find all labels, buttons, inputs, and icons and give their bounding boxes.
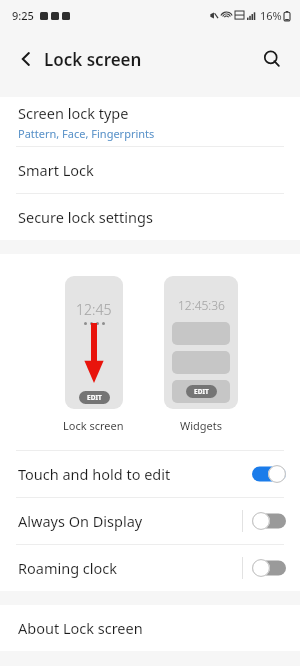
staticText: Pattern, Face, Fingerprints — [18, 126, 155, 141]
button[interactable]: About Lock screen — [0, 605, 300, 651]
staticText: Widgets — [180, 418, 223, 433]
staticText: 9:25 — [12, 8, 34, 23]
staticText: EDIT — [87, 393, 102, 402]
button[interactable]: Touch and hold to edit — [0, 451, 300, 497]
button[interactable]: Always On Display — [0, 498, 300, 544]
staticText: Secure lock settings — [18, 207, 153, 227]
staticText: 16% — [260, 8, 282, 23]
button[interactable]: Secure lock settings — [0, 194, 300, 240]
staticText: Smart Lock — [18, 160, 94, 180]
staticText: EDIT — [194, 387, 209, 396]
staticText: About Lock screen — [18, 618, 143, 638]
button[interactable]: Widgets preview — [164, 276, 238, 433]
staticText: Roaming clock — [18, 558, 118, 578]
staticText: Touch and hold to edit — [18, 464, 171, 484]
staticText: Lock screen — [44, 48, 142, 71]
button[interactable]: Screen lock type — [0, 97, 300, 146]
staticText: Screen lock type — [18, 103, 129, 123]
button[interactable]: Roaming clock — [0, 545, 300, 591]
button[interactable]: Lock screen preview — [63, 276, 124, 433]
staticText: 12:45 — [76, 300, 112, 319]
button[interactable]: Back — [9, 42, 43, 76]
staticText: 12:45:36 — [178, 297, 225, 313]
button[interactable]: Smart Lock — [0, 147, 300, 193]
button[interactable]: Search — [254, 41, 290, 77]
staticText: Lock screen — [63, 418, 124, 433]
staticText: Always On Display — [18, 511, 143, 531]
